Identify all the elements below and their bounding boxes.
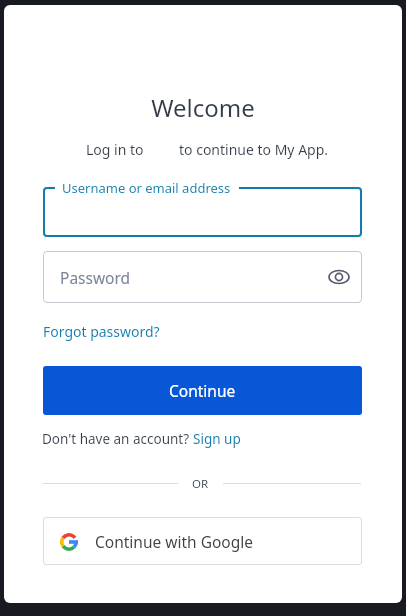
staticText: Welcome [0, 91, 406, 124]
staticText: OR [0, 476, 403, 492]
staticText: Continue with Google [95, 531, 253, 552]
button[interactable]: Continue with Google [43, 517, 362, 565]
button[interactable]: Continue [43, 366, 362, 415]
button[interactable]: Sign up [193, 430, 241, 448]
staticText: Continue [169, 380, 236, 401]
staticText: Username or email address [62, 179, 231, 197]
button[interactable]: Password [43, 251, 362, 303]
staticText: Password [60, 267, 131, 288]
staticText: to continue to My App. [179, 140, 329, 159]
button[interactable] [43, 187, 362, 237]
staticText: Don't have an account? [42, 430, 193, 448]
staticText: Log in to [86, 140, 144, 159]
button[interactable]: Forgot password? [43, 322, 160, 341]
